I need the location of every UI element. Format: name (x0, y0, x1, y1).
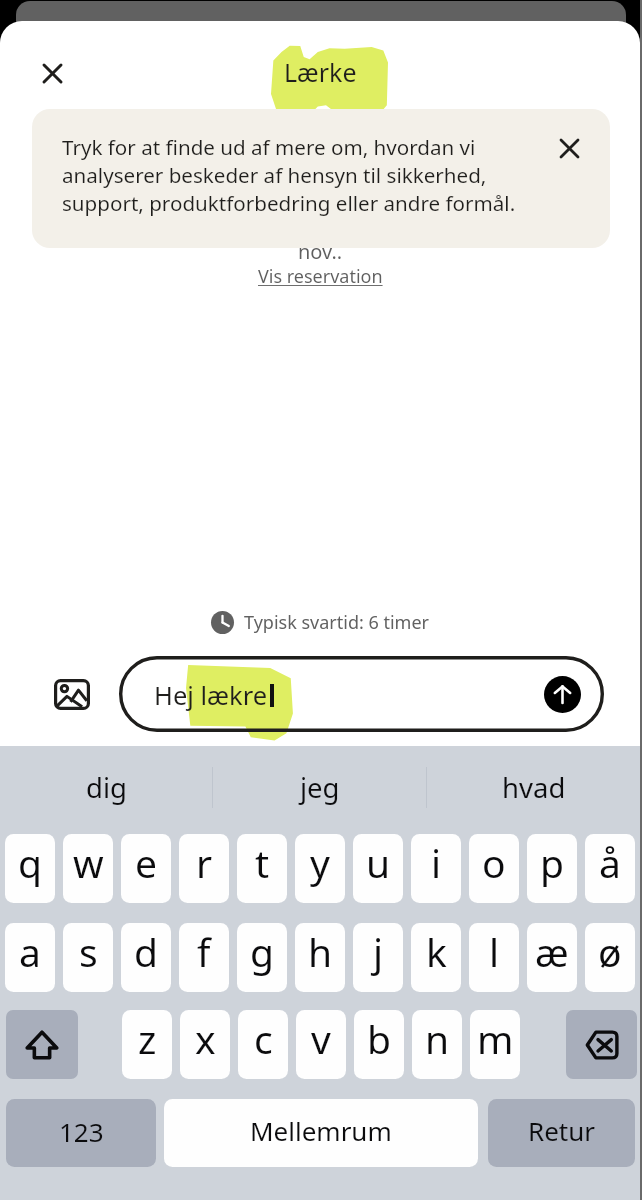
staticText: jeg (300, 769, 340, 806)
staticText: v (311, 1012, 331, 1065)
button[interactable]: i (411, 834, 461, 903)
button[interactable]: d (121, 923, 171, 992)
staticText: Typisk svartid: 6 timer (244, 610, 430, 635)
staticText: Retur (528, 1113, 596, 1148)
button[interactable]: k (411, 923, 461, 992)
button[interactable]: jeg (213, 752, 426, 823)
button[interactable]: y (295, 834, 345, 903)
button[interactable]: m (470, 1010, 520, 1079)
staticText: hvad (502, 769, 566, 806)
button[interactable]: f (179, 923, 229, 992)
staticText: k (426, 925, 447, 978)
staticText: i (431, 836, 442, 889)
staticText: Lærke (284, 55, 357, 89)
button[interactable]: b (354, 1010, 404, 1079)
button[interactable]: dig (0, 752, 212, 823)
button[interactable]: g (237, 923, 287, 992)
staticText: z (138, 1012, 157, 1065)
staticText: a (19, 925, 41, 978)
button[interactable]: Tilføj billede (54, 679, 90, 710)
button[interactable]: z (122, 1010, 172, 1079)
button[interactable]: Send (544, 676, 581, 713)
staticText: m (477, 1012, 514, 1065)
button[interactable]: h (295, 923, 345, 992)
button[interactable]: Skift (6, 1010, 78, 1079)
button[interactable]: o (469, 834, 519, 903)
staticText: t (255, 836, 270, 889)
button[interactable]: 123 (6, 1099, 156, 1167)
staticText: u (366, 836, 391, 889)
button[interactable]: Luk (26, 47, 78, 99)
button[interactable]: j (353, 923, 403, 992)
staticText: 123 (59, 1114, 104, 1149)
button[interactable]: hvad (427, 752, 640, 823)
staticText: f (197, 925, 211, 978)
button[interactable]: æ (527, 923, 577, 992)
button[interactable]: t (237, 834, 287, 903)
staticText: g (250, 925, 274, 978)
staticText: e (135, 836, 157, 889)
staticText: o (482, 836, 506, 889)
button[interactable]: u (353, 834, 403, 903)
button[interactable]: q (5, 834, 55, 903)
staticText: d (134, 925, 158, 978)
button[interactable]: å (585, 834, 635, 903)
button[interactable]: Mellemrum (164, 1099, 478, 1167)
button[interactable]: n (412, 1010, 462, 1079)
staticText: l (489, 925, 500, 978)
button[interactable]: p (527, 834, 577, 903)
button[interactable]: c (238, 1010, 288, 1079)
staticText: r (196, 836, 213, 889)
button[interactable]: r (179, 834, 229, 903)
staticText: w (73, 836, 104, 889)
staticText: q (18, 836, 42, 889)
staticText: å (599, 836, 621, 889)
button[interactable]: Retur (488, 1099, 635, 1167)
button[interactable]: l (469, 923, 519, 992)
button[interactable]: Tryk for at finde ud af mere om, hvordan… (32, 109, 610, 248)
staticText: h (308, 925, 333, 978)
button[interactable]: w (63, 834, 113, 903)
staticText: p (540, 836, 564, 889)
button[interactable]: e (121, 834, 171, 903)
staticText: x (195, 1012, 216, 1065)
button[interactable]: a (5, 923, 55, 992)
staticText: n (425, 1012, 450, 1065)
staticText: Hej lækre (154, 678, 268, 713)
button[interactable]: Slet (566, 1010, 637, 1079)
staticText: Tryk for at finde ud af mere om, hvordan… (62, 133, 534, 217)
button[interactable]: Hej lækre (119, 656, 604, 732)
staticText: Mellemrum (250, 1113, 392, 1148)
button[interactable]: Vis reservation (258, 264, 383, 289)
staticText: nov.. (298, 238, 343, 264)
button[interactable]: v (296, 1010, 346, 1079)
button[interactable]: s (63, 923, 113, 992)
staticText: æ (535, 925, 569, 978)
button[interactable]: ø (585, 923, 635, 992)
staticText: b (367, 1012, 391, 1065)
staticText: y (310, 836, 330, 889)
button[interactable]: Luk besked (543, 122, 595, 174)
button[interactable]: x (180, 1010, 230, 1079)
staticText: dig (86, 769, 127, 806)
staticText: ø (598, 925, 622, 978)
staticText: c (254, 1012, 273, 1065)
staticText: s (79, 925, 98, 978)
staticText: j (373, 925, 384, 978)
